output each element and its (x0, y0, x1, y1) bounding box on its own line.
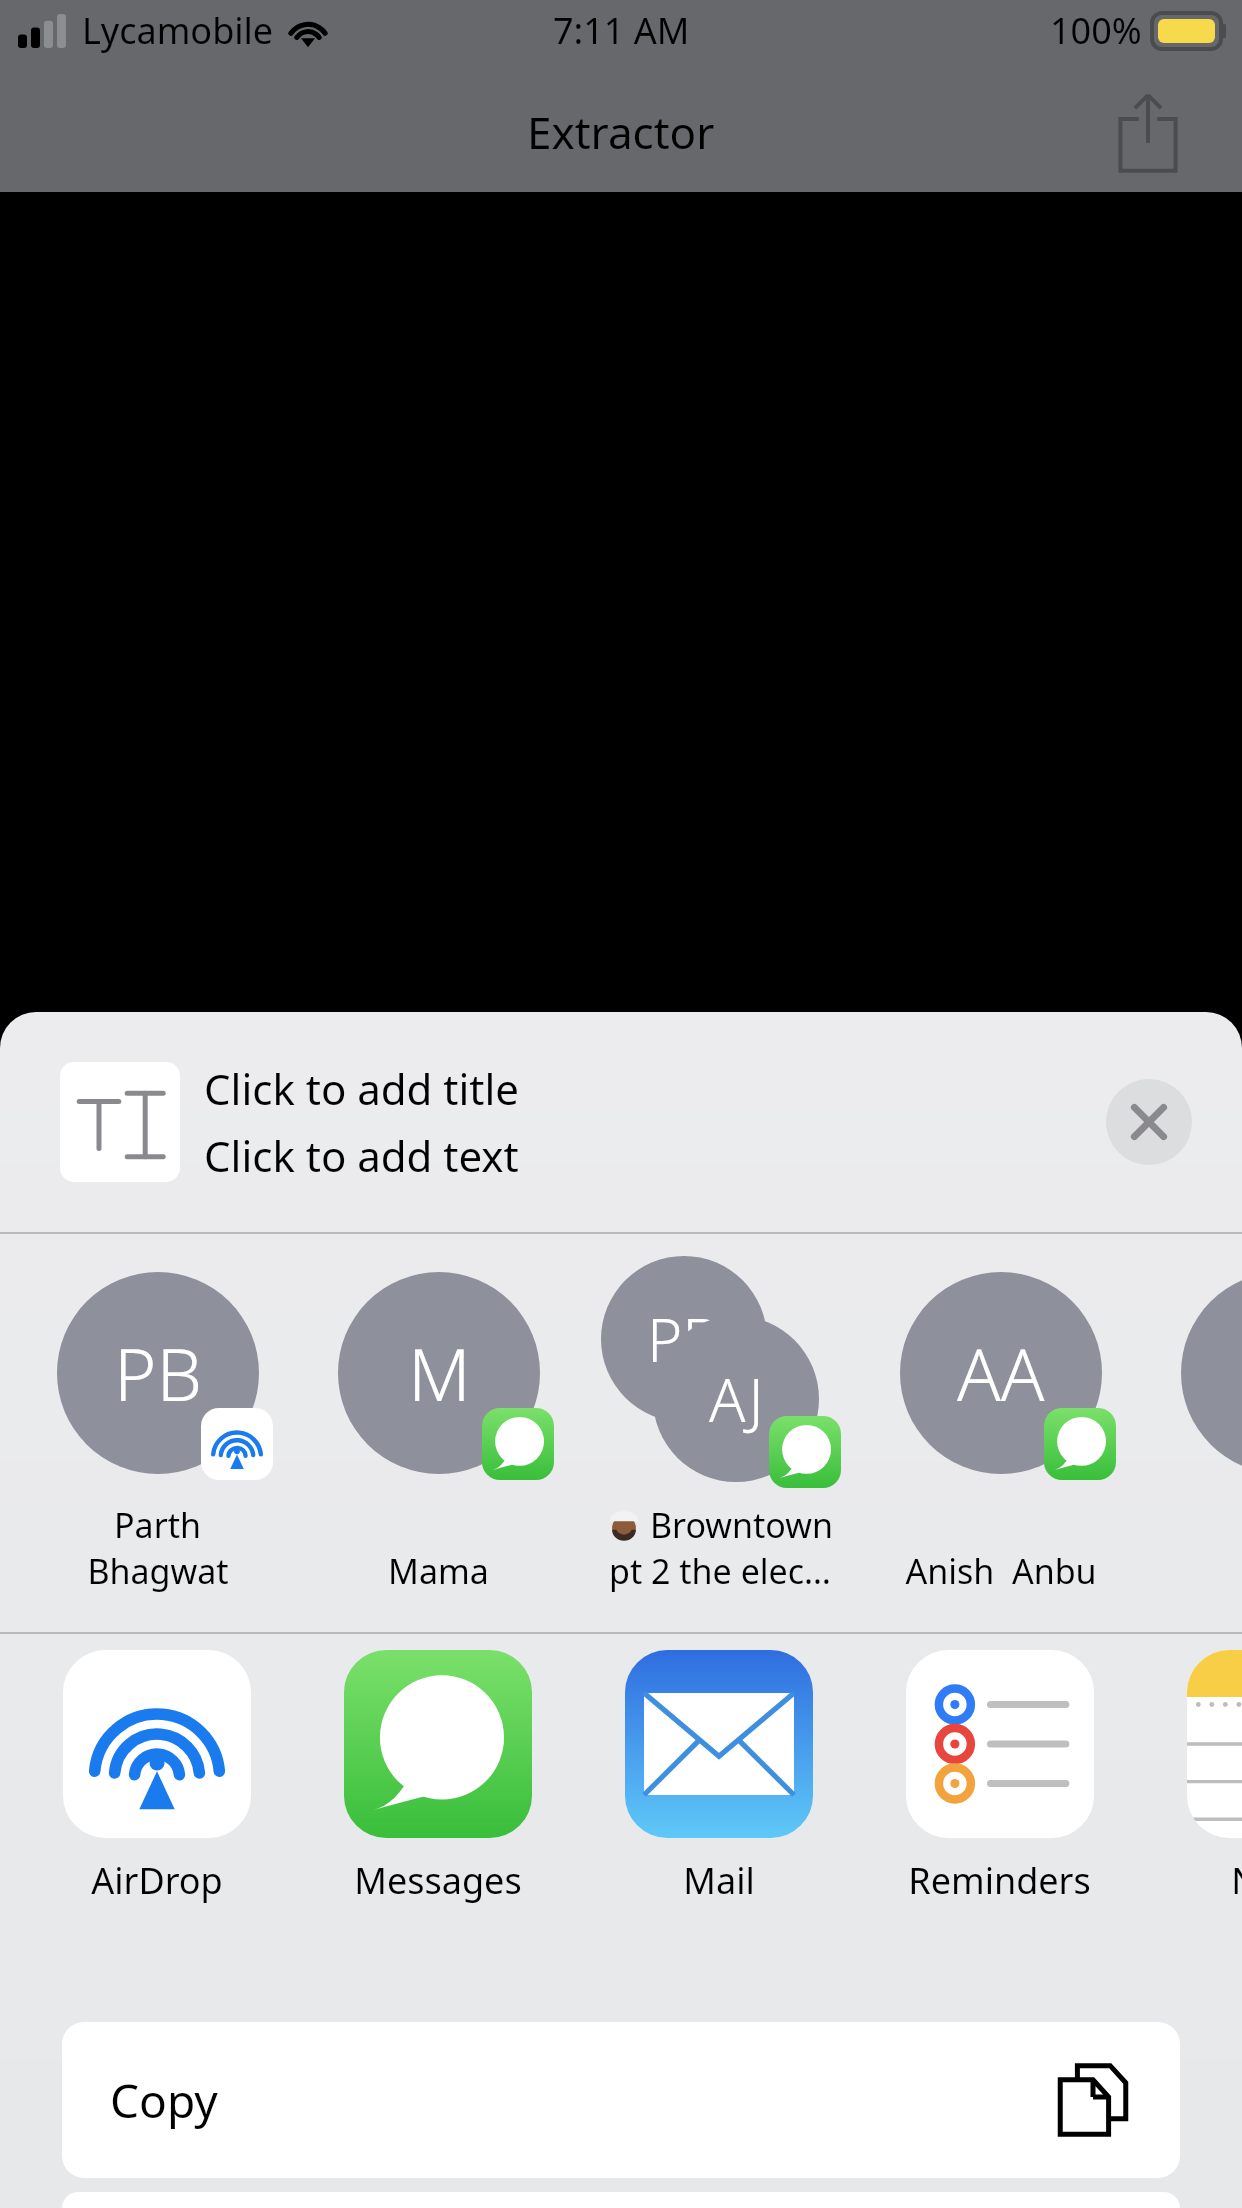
button[interactable]: Share (1102, 86, 1194, 178)
staticText: Click to add title (204, 1060, 520, 1117)
staticText: Messages (354, 1856, 522, 1905)
staticText: PB (114, 1324, 202, 1422)
staticText: AJ (709, 1358, 764, 1440)
button[interactable]: P (1141, 1272, 1242, 1602)
button[interactable]: Copy (62, 2022, 1180, 2178)
staticText: AA (957, 1324, 1045, 1422)
staticText: Copy (110, 2069, 218, 2132)
staticText: PB (647, 1298, 721, 1380)
staticText: M (408, 1324, 471, 1422)
staticText: Click to add text (204, 1127, 519, 1184)
staticText: Anish Anbu (905, 1548, 1097, 1594)
staticText: Bhagwat (87, 1548, 229, 1594)
staticText: Extractor (527, 102, 715, 162)
button[interactable]: M (298, 1272, 579, 1602)
staticText: Parth (114, 1502, 201, 1548)
button[interactable]: PB (579, 1272, 860, 1602)
button[interactable]: Mail (578, 1650, 859, 1905)
staticText: Notes (1231, 1856, 1242, 1905)
button[interactable] (60, 1062, 180, 1182)
button[interactable]: Notes (1140, 1650, 1242, 1905)
button[interactable]: Reminders (859, 1650, 1140, 1905)
staticText: pt 2 the elec… (609, 1548, 831, 1594)
staticText: 7:11 AM (553, 6, 690, 55)
button[interactable]: PB (17, 1272, 298, 1602)
staticText: Mama (388, 1548, 489, 1594)
staticText: Mail (683, 1856, 755, 1905)
staticText: Lycamobile (82, 6, 274, 55)
staticText: Browntown (650, 1502, 833, 1548)
button[interactable]: AirDrop (16, 1650, 297, 1905)
button[interactable]: Messages (297, 1650, 578, 1905)
button[interactable]: AA (860, 1272, 1141, 1602)
staticText: AirDrop (91, 1856, 223, 1905)
staticText: 100% (1050, 6, 1142, 55)
button[interactable]: Close (1106, 1079, 1192, 1165)
staticText: Reminders (908, 1856, 1091, 1905)
